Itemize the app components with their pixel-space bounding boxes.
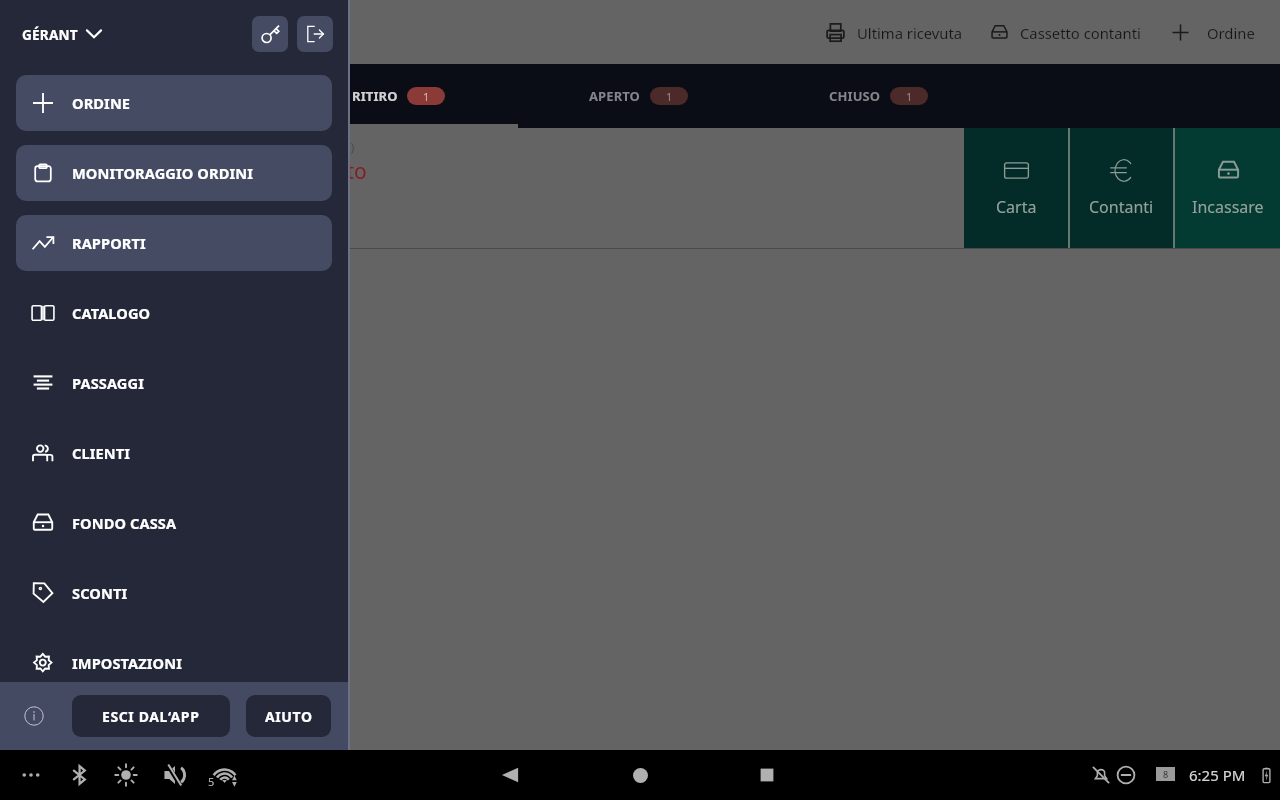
staticText: IN CORSO bbox=[119, 87, 184, 105]
staticText: 1 bbox=[906, 89, 913, 104]
button[interactable]: AIUTO bbox=[246, 695, 331, 737]
button[interactable]: Back bbox=[488, 753, 532, 797]
staticText: Carta bbox=[996, 196, 1037, 218]
button[interactable]: Ordine bbox=[1170, 14, 1255, 51]
staticText: ORDINE bbox=[72, 93, 131, 113]
staticText: FONDO CASSA bbox=[72, 513, 177, 533]
button[interactable]: Key bbox=[252, 16, 288, 52]
staticText: CLIENTI bbox=[72, 443, 131, 463]
button[interactable]: CHIUSO bbox=[828, 73, 929, 119]
staticText: 1 bbox=[666, 89, 673, 104]
button[interactable]: SCONTI bbox=[16, 565, 332, 621]
button[interactable]: ORDINE bbox=[16, 75, 332, 131]
staticText: GÉRANT bbox=[22, 25, 78, 44]
staticText: Ultima ricevuta bbox=[857, 23, 963, 43]
button[interactable]: CLIENTI bbox=[16, 425, 332, 481]
button[interactable]: MONITORAGGIO ORDINI bbox=[16, 145, 332, 201]
button[interactable]: PASSAGGI bbox=[16, 355, 332, 411]
staticText: APERTO bbox=[589, 87, 641, 105]
button[interactable]: APERTO bbox=[588, 73, 689, 119]
staticText: Tavolo 3 (coperti: 0) bbox=[236, 138, 355, 156]
button[interactable]: ESCI DAL‘APP bbox=[72, 695, 230, 737]
staticText: SCONTI bbox=[72, 583, 128, 603]
button[interactable]: Recents bbox=[745, 753, 789, 797]
staticText: Ordine aperto bbox=[228, 157, 367, 186]
button[interactable]: CATALOGO bbox=[16, 285, 332, 341]
button[interactable]: IN CORSO bbox=[118, 73, 232, 119]
staticText: RAPPORTI bbox=[72, 233, 146, 253]
staticText: ESCI DAL‘APP bbox=[102, 707, 200, 726]
button[interactable]: IMPOSTAZIONI bbox=[16, 635, 332, 691]
staticText: IMPOSTAZIONI bbox=[72, 653, 182, 673]
button[interactable]: GÉRANT bbox=[22, 25, 102, 44]
staticText: AIUTO bbox=[265, 707, 313, 726]
staticText: 5 bbox=[208, 774, 215, 789]
button[interactable]: RAPPORTI bbox=[16, 215, 332, 271]
button[interactable]: Carta bbox=[964, 128, 1068, 249]
button[interactable]: Info bbox=[21, 703, 47, 729]
button[interactable]: RITIRO bbox=[351, 73, 446, 119]
staticText: Incassare bbox=[1192, 196, 1264, 218]
staticText: 1 bbox=[423, 89, 430, 104]
button[interactable]: Home bbox=[618, 753, 662, 797]
button[interactable]: Contanti bbox=[1070, 128, 1173, 249]
staticText: RITIRO bbox=[352, 87, 398, 105]
staticText: 6:25 PM bbox=[1189, 765, 1246, 785]
button[interactable]: Cassetto contanti bbox=[989, 14, 1141, 51]
staticText: Cassetto contanti bbox=[1020, 23, 1141, 43]
staticText: 8 bbox=[1163, 768, 1169, 780]
button[interactable]: FONDO CASSA bbox=[16, 495, 332, 551]
staticText: Contanti bbox=[1089, 196, 1154, 218]
button[interactable]: Ultima ricevuta bbox=[825, 14, 963, 51]
staticText: CHIUSO bbox=[829, 87, 881, 105]
staticText: PASSAGGI bbox=[72, 373, 144, 393]
staticText: MONITORAGGIO ORDINI bbox=[72, 163, 253, 183]
staticText: CATALOGO bbox=[72, 303, 151, 323]
button[interactable]: Incassare bbox=[1175, 128, 1280, 249]
staticText: Ordine bbox=[1207, 23, 1255, 43]
button[interactable]: Logout bbox=[297, 16, 333, 52]
